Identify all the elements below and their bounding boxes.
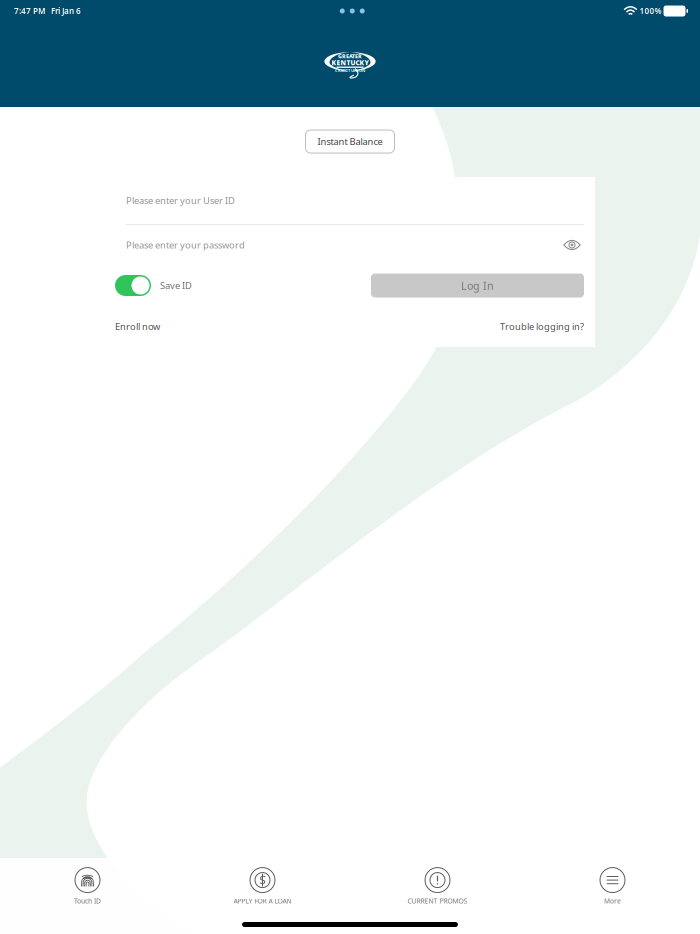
button[interactable]: Enroll now	[115, 320, 160, 333]
staticText: Enroll now	[115, 320, 160, 333]
staticText: Save ID	[160, 279, 192, 292]
staticText: CREDIT UNION	[335, 68, 365, 73]
staticText: Log In	[461, 278, 494, 293]
staticText: 7:47 PM Fri Jan 6	[14, 6, 81, 16]
button[interactable]: Instant Balance	[305, 130, 394, 153]
button[interactable]: APPLY FOR A LOAN	[175, 863, 350, 910]
button[interactable]: Log In	[371, 273, 584, 297]
staticText: Please enter your password	[126, 239, 245, 251]
staticText: CURRENT PROMOS	[407, 897, 467, 905]
staticText: KENTUCKY	[331, 58, 368, 67]
staticText: More	[604, 897, 621, 905]
staticText: GREATER	[338, 53, 362, 60]
staticText: Trouble logging in?	[500, 320, 584, 333]
staticText: 100%	[637, 6, 663, 16]
button[interactable]: CURRENT PROMOS	[350, 863, 525, 910]
button[interactable]: Trouble logging in?	[500, 320, 584, 333]
button[interactable]: Touch ID	[0, 863, 175, 910]
button[interactable]: Save ID	[115, 275, 192, 296]
staticText: Touch ID	[74, 897, 101, 905]
button[interactable]: Show password	[563, 237, 581, 253]
staticText: Instant Balance	[317, 135, 382, 148]
staticText: APPLY FOR A LOAN	[233, 897, 291, 905]
button[interactable]: More	[525, 863, 700, 910]
staticText: Please enter your User ID	[126, 194, 235, 207]
